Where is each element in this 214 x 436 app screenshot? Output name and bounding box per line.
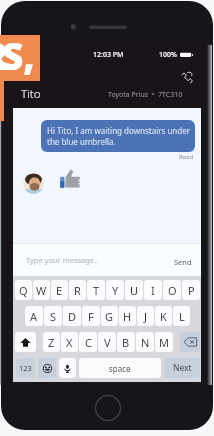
staticText: S, bbox=[2, 30, 35, 76]
button[interactable]: N bbox=[136, 332, 154, 352]
button[interactable]: Q bbox=[15, 280, 32, 300]
staticText: X bbox=[66, 335, 73, 350]
button[interactable]: E bbox=[51, 280, 68, 300]
staticText: Next bbox=[173, 362, 192, 374]
staticText: M bbox=[159, 335, 169, 350]
button[interactable]: Shift bbox=[15, 332, 36, 352]
button[interactable]: M bbox=[155, 332, 173, 352]
button[interactable]: F bbox=[82, 306, 100, 326]
button[interactable]: G bbox=[101, 306, 118, 326]
staticText: Y bbox=[112, 283, 119, 298]
staticText: U bbox=[130, 283, 139, 298]
button[interactable]: Hi Tito, I am waiting downstairs under t… bbox=[41, 120, 195, 152]
staticText: Z bbox=[48, 335, 55, 350]
staticText: R bbox=[0, 30, 9, 76]
button[interactable]: Emoji bbox=[38, 358, 56, 378]
button[interactable]: Call bbox=[178, 68, 196, 86]
button[interactable]: X bbox=[61, 332, 78, 352]
staticText: T bbox=[93, 283, 100, 298]
button[interactable]: K bbox=[155, 306, 172, 326]
button[interactable]: S bbox=[44, 306, 62, 326]
staticText: Tito bbox=[21, 86, 41, 102]
button[interactable]: T bbox=[87, 280, 105, 300]
staticText: C bbox=[85, 335, 92, 350]
staticText: Q bbox=[19, 283, 28, 298]
staticText: Send bbox=[174, 257, 192, 267]
staticText: Hi Tito, I am waiting downstairs under t… bbox=[47, 125, 195, 147]
button[interactable]: A bbox=[25, 306, 43, 326]
staticText: 12:03 PM bbox=[93, 50, 124, 60]
staticText: W bbox=[36, 283, 47, 298]
staticText: O bbox=[168, 283, 177, 298]
staticText: N bbox=[141, 335, 150, 350]
staticText: 100% bbox=[159, 50, 177, 60]
button[interactable]: V bbox=[98, 332, 116, 352]
button[interactable]: Y bbox=[106, 280, 124, 300]
staticText: D bbox=[68, 309, 77, 324]
button[interactable]: I bbox=[144, 280, 162, 300]
staticText: space bbox=[109, 363, 131, 374]
button[interactable]: H bbox=[119, 306, 136, 326]
button[interactable]: D bbox=[63, 306, 81, 326]
staticText: B bbox=[122, 335, 130, 350]
staticText: H bbox=[123, 309, 132, 324]
button[interactable]: O bbox=[163, 280, 181, 300]
button[interactable]: Z bbox=[43, 332, 60, 352]
button[interactable]: Voice input bbox=[59, 358, 76, 378]
button[interactable]: Send bbox=[174, 257, 192, 267]
staticText: Toyota Prius • 7TC310 bbox=[108, 90, 183, 100]
staticText: F bbox=[88, 309, 94, 324]
staticText: K bbox=[160, 309, 167, 324]
staticText: A bbox=[30, 309, 38, 324]
button[interactable]: Backspace bbox=[180, 332, 200, 352]
button[interactable]: C bbox=[79, 332, 97, 352]
staticText: S bbox=[50, 309, 57, 324]
staticText: I bbox=[151, 283, 155, 298]
button[interactable]: R bbox=[69, 280, 86, 300]
staticText: P bbox=[188, 283, 195, 298]
button[interactable]: 123 bbox=[16, 358, 35, 378]
staticText: 123 bbox=[19, 363, 32, 373]
staticText: E bbox=[56, 283, 63, 298]
button[interactable]: P bbox=[182, 280, 200, 300]
staticText: V bbox=[104, 335, 111, 350]
staticText: R bbox=[74, 283, 81, 298]
staticText: Read bbox=[179, 153, 194, 161]
button[interactable]: U bbox=[125, 280, 143, 300]
button[interactable]: B bbox=[117, 332, 135, 352]
button[interactable]: W bbox=[33, 280, 50, 300]
button[interactable]: Next bbox=[164, 358, 200, 378]
button[interactable]: L bbox=[173, 306, 190, 326]
staticText: J bbox=[144, 309, 148, 324]
button[interactable]: space bbox=[79, 358, 161, 378]
staticText: G bbox=[105, 309, 114, 324]
staticText: Type your message.. bbox=[26, 255, 99, 265]
staticText: L bbox=[179, 309, 185, 324]
button[interactable]: J bbox=[137, 306, 154, 326]
